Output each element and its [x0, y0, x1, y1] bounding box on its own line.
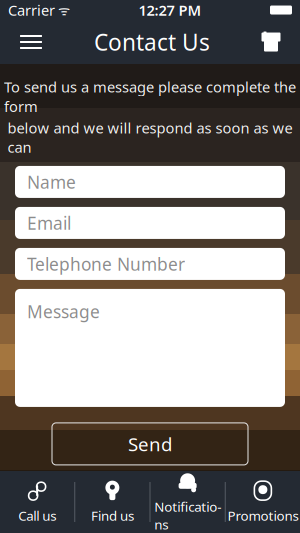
button[interactable]: Call us: [0, 471, 74, 533]
staticText: Send: [128, 431, 172, 456]
staticText: Call us: [18, 507, 56, 524]
button[interactable]: Email: [15, 207, 285, 239]
staticText: Name: [27, 170, 76, 193]
button[interactable]: Promotions: [226, 471, 300, 533]
staticText: Contact Us: [94, 27, 210, 57]
button[interactable]: Telephone Number: [15, 248, 285, 280]
staticText: Email: [27, 211, 71, 234]
button[interactable]: Send: [52, 423, 248, 465]
staticText: below and we will respond as soon as we …: [7, 118, 292, 157]
button[interactable]: Find us: [75, 471, 149, 533]
button[interactable]: Name: [15, 166, 285, 198]
staticText: Message: [27, 300, 100, 323]
staticText: 12:27 PM: [138, 0, 201, 20]
button[interactable]: Notifications: [150, 471, 225, 533]
button[interactable]: Message: [15, 289, 285, 407]
staticText: Find us: [91, 507, 134, 524]
staticText: Carrier: [8, 0, 55, 20]
staticText: Telephone Number: [27, 252, 185, 275]
staticText: Notifications: [154, 498, 221, 533]
staticText: To send us a message please complete the…: [4, 77, 296, 116]
staticText: Promotions: [227, 507, 298, 524]
staticText: ᯤ: [55, 1, 70, 19]
button[interactable]: Home: [250, 20, 292, 64]
button[interactable]: Menu: [8, 20, 54, 64]
